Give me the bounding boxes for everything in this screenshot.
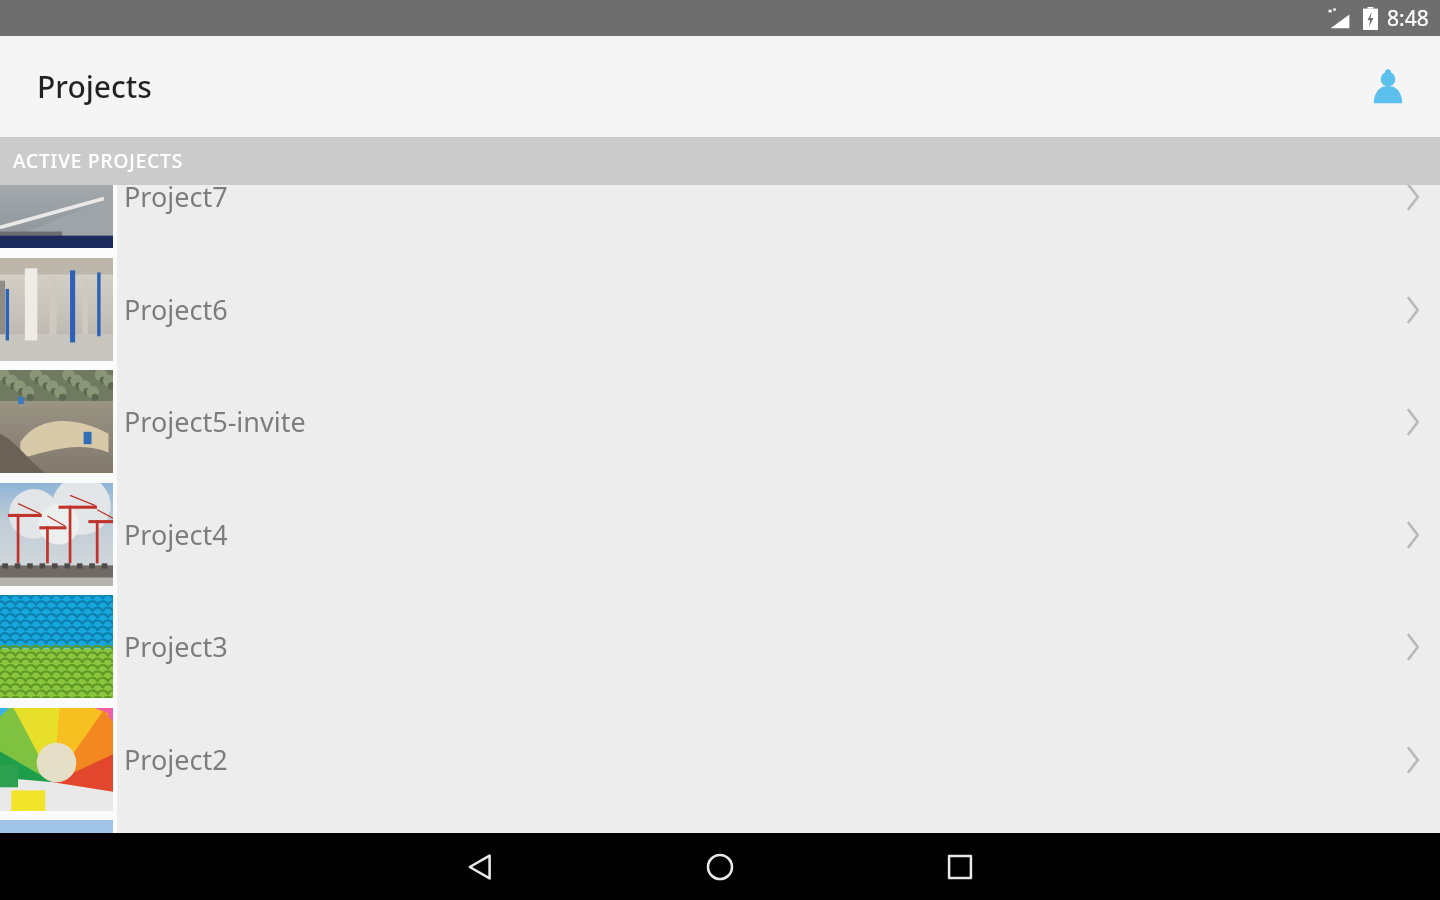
staticText: Project2 — [124, 741, 228, 778]
staticText: Project5-invite — [124, 403, 306, 440]
staticText: Project3 — [124, 628, 228, 665]
button[interactable]: Project1 — [0, 815, 1440, 900]
button[interactable]: Project5-invite — [0, 365, 1440, 478]
button[interactable]: Account — [1360, 59, 1416, 115]
button[interactable]: Project7 — [0, 140, 1440, 253]
staticText: ACTIVE PROJECTS — [13, 148, 184, 174]
staticText: Projects — [37, 66, 152, 107]
staticText: Project7 — [124, 178, 228, 215]
staticText: 8:48 — [1387, 4, 1429, 33]
button[interactable]: Project3 — [0, 590, 1440, 703]
button[interactable]: Back — [440, 833, 520, 900]
button[interactable]: Project2 — [0, 703, 1440, 816]
button[interactable]: Home — [680, 833, 760, 900]
button[interactable]: Project4 — [0, 478, 1440, 591]
button[interactable]: Recents — [920, 833, 1000, 900]
staticText: Project4 — [124, 516, 228, 553]
button[interactable]: Project6 — [0, 253, 1440, 366]
staticText: Project6 — [124, 291, 228, 328]
